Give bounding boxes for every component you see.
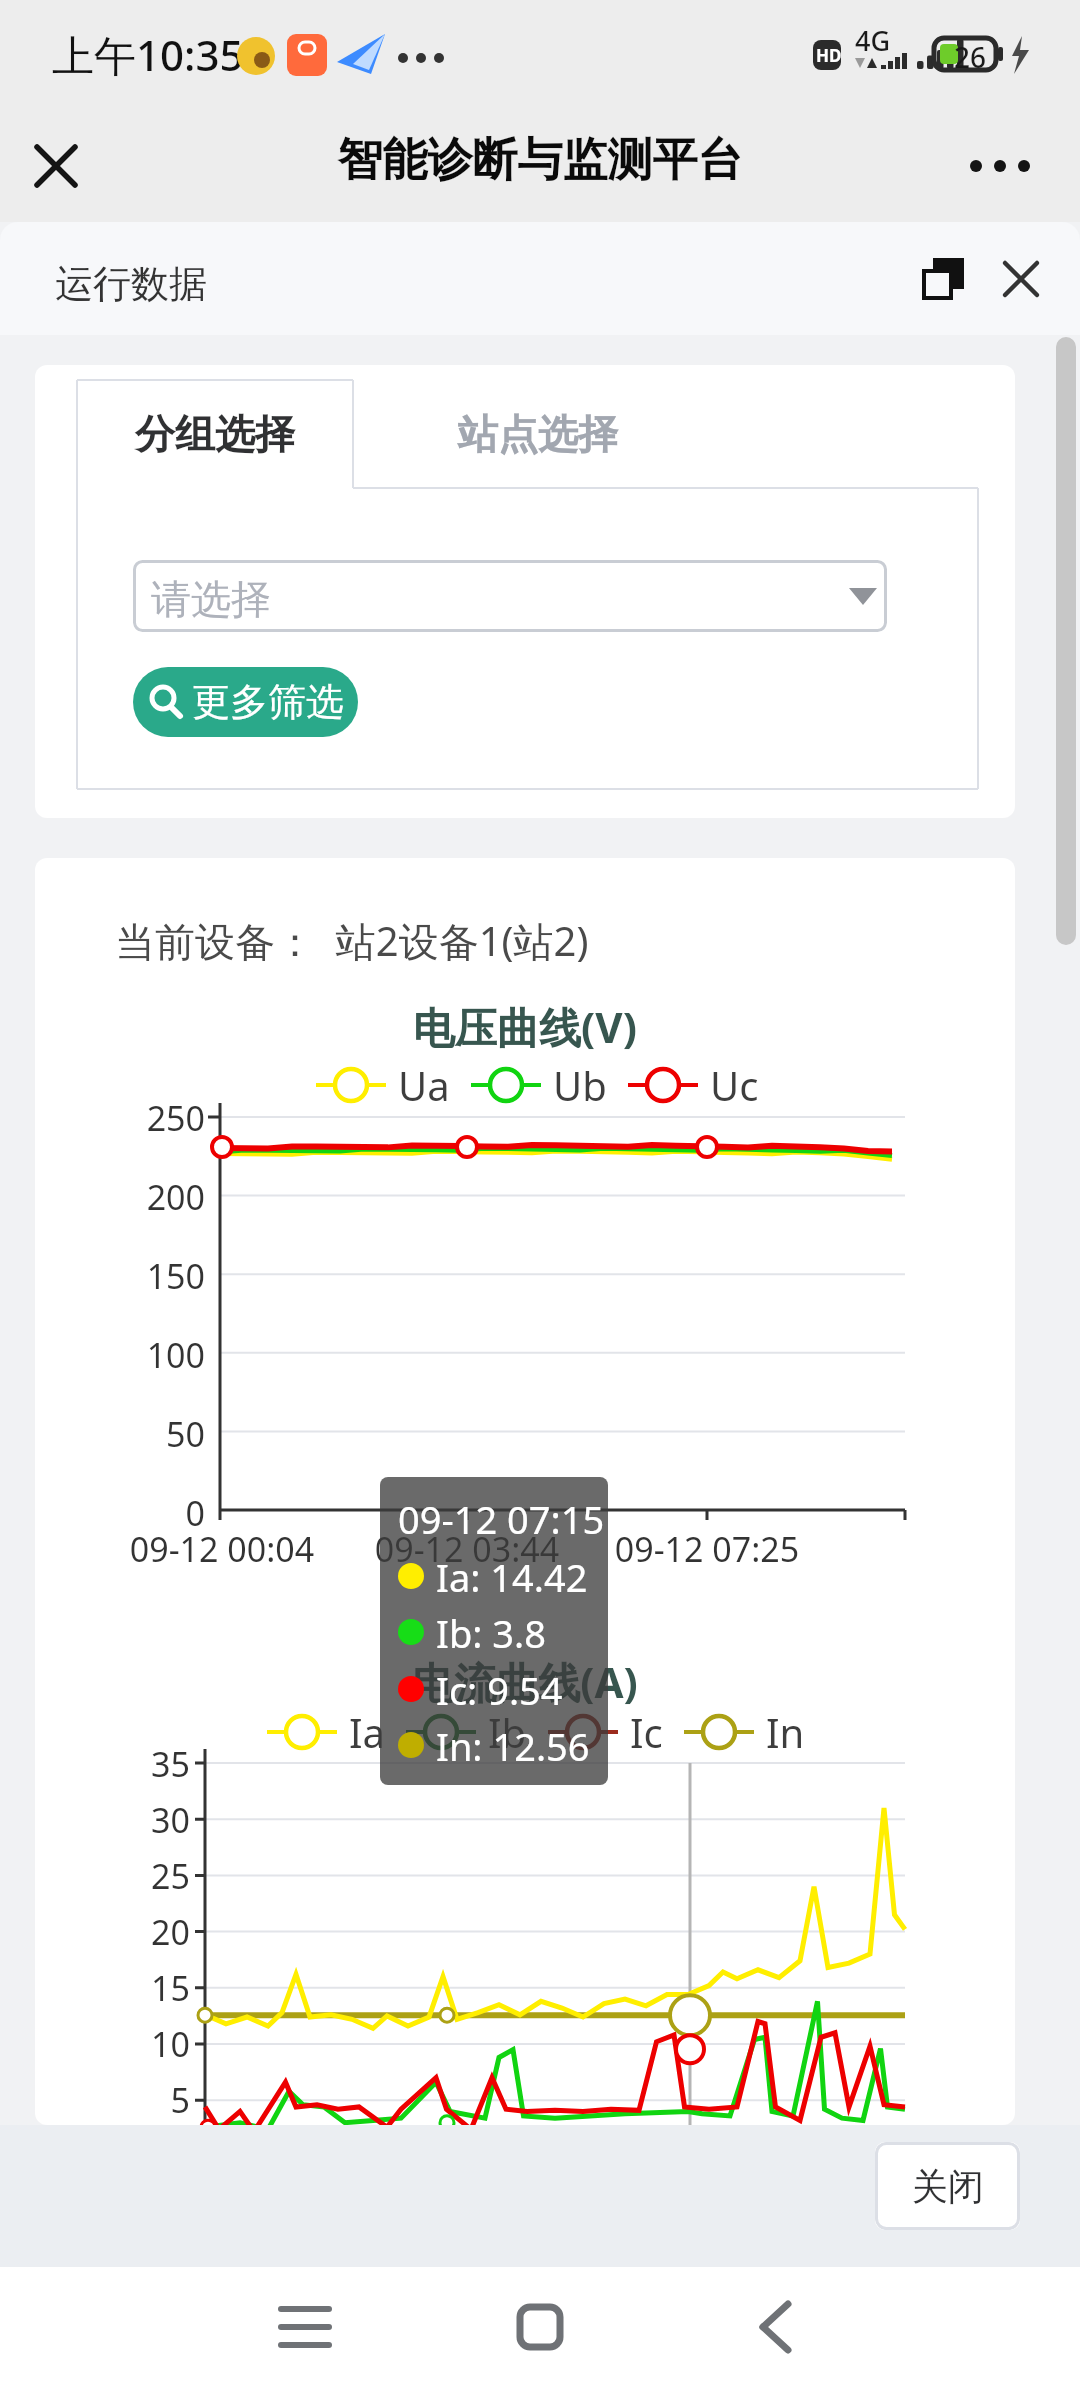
staticText: 20 [95, 1909, 190, 1955]
staticText: 站点选择 [458, 409, 618, 459]
staticText: Ic [630, 1705, 663, 1759]
staticText: HD [816, 44, 842, 67]
staticText: 请选择 [151, 574, 271, 624]
staticText: 更多筛选 [192, 678, 344, 726]
staticText: 电压曲线(V) [35, 998, 1015, 1055]
staticText: 250 [95, 1095, 205, 1141]
staticText: 10 [95, 2021, 190, 2067]
button[interactable] [490, 2287, 590, 2367]
staticText: 26 [954, 38, 987, 76]
button[interactable]: 关闭 [875, 2142, 1020, 2230]
staticText: 30 [95, 1797, 190, 1843]
button[interactable] [986, 246, 1056, 312]
staticText: In: 12.56 [436, 1720, 590, 1772]
staticText: 50 [95, 1411, 205, 1457]
staticText: 5 [95, 2077, 190, 2123]
staticText: 200 [95, 1174, 205, 1220]
staticText: Ib: 3.8 [436, 1607, 546, 1659]
button[interactable] [955, 130, 1045, 202]
staticText: 当前设备： 站2设备1(站2) [115, 913, 589, 968]
button[interactable]: 站点选择 [393, 380, 683, 488]
staticText: 电流曲线(A) [35, 1653, 1015, 1710]
staticText: 150 [95, 1253, 205, 1299]
staticText: 09-12 03:44 [367, 1526, 567, 1572]
staticText: Ia: 14.42 [436, 1551, 588, 1603]
staticText: Ua [398, 1058, 450, 1112]
staticText: 09-12 00:04 [122, 1526, 322, 1572]
button[interactable] [255, 2287, 355, 2367]
staticText: 09-12 07:25 [607, 1526, 807, 1572]
staticText: Ia [349, 1705, 385, 1759]
staticText: Ib [488, 1705, 527, 1759]
button[interactable] [908, 246, 978, 312]
button[interactable]: 请选择 [133, 560, 887, 632]
staticText: 分组选择 [135, 409, 295, 459]
staticText: 智能诊断与监测平台 [0, 132, 1080, 189]
staticText: 4G [855, 22, 891, 59]
staticText: 0 [95, 1490, 205, 1536]
staticText: Uc [710, 1058, 759, 1112]
staticText: Ub [553, 1058, 607, 1112]
staticText: 35 [95, 1741, 190, 1787]
staticText: Ic: 9.54 [436, 1664, 563, 1716]
staticText: 上午10:35 [52, 26, 244, 83]
staticText: 运行数据 [55, 260, 207, 308]
staticText: 关闭 [912, 2164, 984, 2209]
button[interactable] [725, 2287, 825, 2367]
staticText: 100 [95, 1332, 205, 1378]
staticText: 25 [95, 1853, 190, 1899]
button[interactable]: 分组选择 [77, 380, 353, 488]
staticText: 09-12 07:15 [398, 1493, 605, 1545]
staticText: In [766, 1705, 805, 1759]
staticText: 15 [95, 1965, 190, 2011]
button[interactable] [18, 128, 94, 204]
button[interactable]: 更多筛选 [133, 667, 358, 737]
